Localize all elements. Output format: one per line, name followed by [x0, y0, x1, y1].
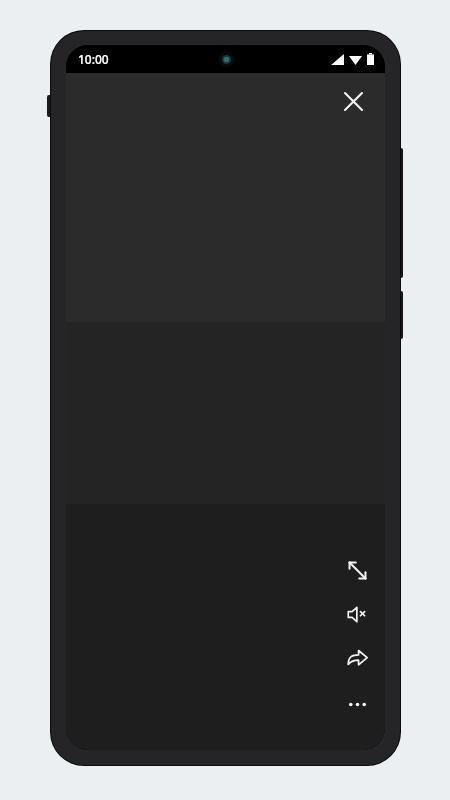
- button[interactable]: Close: [331, 79, 375, 123]
- button[interactable]: Expand: [337, 550, 377, 590]
- button[interactable]: More options: [337, 684, 377, 724]
- button[interactable]: Share: [337, 638, 377, 678]
- staticText: 10:00: [78, 51, 109, 67]
- button[interactable]: Unmute: [337, 594, 377, 634]
